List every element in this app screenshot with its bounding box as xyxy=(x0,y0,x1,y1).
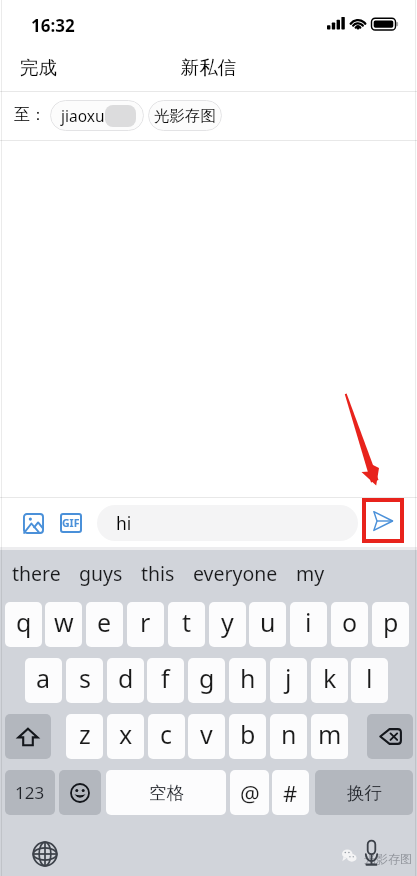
button[interactable]: Emoji xyxy=(59,770,101,815)
button[interactable]: Dictation xyxy=(356,833,386,867)
staticText: x xyxy=(119,717,133,751)
staticText: e xyxy=(97,605,112,639)
staticText: z xyxy=(79,717,91,751)
staticText: b xyxy=(240,717,256,751)
button[interactable]: 换行 xyxy=(315,770,413,815)
staticText: @ xyxy=(240,778,260,808)
staticText: 完成 xyxy=(20,56,57,79)
staticText: my xyxy=(296,560,325,587)
staticText: r xyxy=(140,605,151,639)
staticText: v xyxy=(200,717,213,751)
button[interactable]: k xyxy=(311,658,348,703)
button[interactable]: my xyxy=(287,554,334,593)
staticText: 换行 xyxy=(347,782,382,804)
button[interactable]: Send xyxy=(362,498,404,543)
button[interactable]: n xyxy=(270,714,307,759)
staticText: # xyxy=(283,778,298,808)
staticText: a xyxy=(36,661,51,695)
button[interactable]: v xyxy=(188,714,225,759)
staticText: i xyxy=(305,605,312,639)
button[interactable]: 空格 xyxy=(106,770,226,815)
button[interactable]: 光影存图 xyxy=(148,100,222,131)
button[interactable]: hi xyxy=(97,505,358,541)
staticText: u xyxy=(260,605,276,639)
button[interactable]: d xyxy=(107,658,144,703)
button[interactable]: Shift xyxy=(5,714,51,759)
button[interactable]: q xyxy=(5,602,42,647)
button[interactable]: o xyxy=(331,602,368,647)
staticText: GIF xyxy=(62,516,80,530)
button[interactable]: g xyxy=(188,658,225,703)
button[interactable]: w xyxy=(45,602,82,647)
staticText: q xyxy=(16,605,32,639)
staticText: g xyxy=(199,661,215,695)
staticText: s xyxy=(79,661,91,695)
staticText: p xyxy=(383,605,399,639)
button[interactable]: there xyxy=(3,554,70,593)
staticText: h xyxy=(240,661,256,695)
staticText: 新私信 xyxy=(0,56,417,79)
button[interactable]: Delete xyxy=(367,714,413,759)
button[interactable]: a xyxy=(25,658,62,703)
staticText: 光影存图 xyxy=(364,851,412,866)
staticText: f xyxy=(161,661,170,695)
button[interactable]: u xyxy=(249,602,286,647)
button[interactable]: this xyxy=(132,554,184,593)
button[interactable]: x xyxy=(107,714,144,759)
button[interactable]: f xyxy=(147,658,184,703)
staticText: 123 xyxy=(15,781,45,804)
button[interactable]: r xyxy=(127,602,164,647)
button[interactable]: t xyxy=(168,602,205,647)
staticText: 光影存图 xyxy=(154,106,216,126)
staticText: c xyxy=(160,717,173,751)
button[interactable]: i xyxy=(290,602,327,647)
button[interactable]: l xyxy=(351,658,388,703)
staticText: k xyxy=(323,661,337,695)
button[interactable]: s xyxy=(66,658,103,703)
staticText: everyone xyxy=(193,560,278,587)
staticText: 16:32 xyxy=(31,14,75,37)
button[interactable]: jiaoxue xyxy=(50,100,144,131)
staticText: l xyxy=(366,661,373,695)
staticText: this xyxy=(141,560,175,587)
button[interactable]: Switch keyboard xyxy=(26,835,64,873)
button[interactable]: m xyxy=(311,714,348,759)
staticText: guys xyxy=(79,560,123,587)
staticText: o xyxy=(342,605,358,639)
button[interactable]: b xyxy=(229,714,266,759)
staticText: 空格 xyxy=(149,782,184,804)
button[interactable]: j xyxy=(270,658,307,703)
staticText: there xyxy=(12,560,61,587)
button[interactable]: # xyxy=(272,770,309,815)
button[interactable]: GIF xyxy=(60,513,82,533)
button[interactable]: guys xyxy=(70,554,132,593)
staticText: d xyxy=(118,661,134,695)
button[interactable]: z xyxy=(66,714,103,759)
button[interactable]: y xyxy=(209,602,246,647)
staticText: hi xyxy=(116,511,132,535)
button[interactable]: p xyxy=(372,602,409,647)
staticText: jiaoxue xyxy=(61,105,114,126)
button[interactable]: e xyxy=(86,602,123,647)
staticText: j xyxy=(285,661,292,695)
staticText: w xyxy=(54,605,74,639)
staticText: n xyxy=(281,717,297,751)
button[interactable]: 完成 xyxy=(11,49,66,86)
staticText: 至： xyxy=(14,105,46,125)
staticText: m xyxy=(318,717,342,751)
button[interactable]: c xyxy=(148,714,185,759)
button[interactable]: Photo xyxy=(17,507,51,541)
button[interactable]: everyone xyxy=(184,554,287,593)
staticText: t xyxy=(182,605,192,639)
button[interactable]: h xyxy=(229,658,266,703)
button[interactable]: 123 xyxy=(5,770,55,815)
button[interactable]: @ xyxy=(230,770,269,815)
staticText: y xyxy=(221,605,234,639)
